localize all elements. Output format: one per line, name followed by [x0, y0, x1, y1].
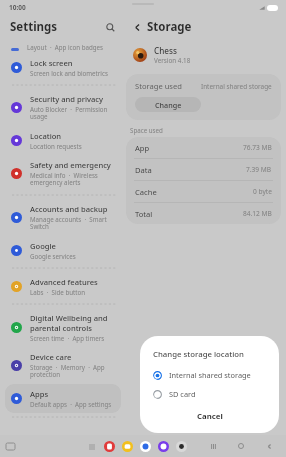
staticText: Storage — [147, 19, 192, 35]
staticText: Apps — [30, 389, 49, 399]
button[interactable]: Layout · App icon badges — [0, 38, 126, 51]
staticText: Cancel — [197, 411, 223, 422]
staticText: Data — [135, 165, 152, 175]
button[interactable]: Google — [5, 236, 121, 265]
button[interactable]: Search settings — [102, 19, 118, 35]
staticText: Auto Blocker · Permission usage — [30, 105, 108, 121]
staticText: SD card — [169, 389, 196, 399]
button[interactable]: Back — [264, 441, 274, 451]
button[interactable]: App — [104, 441, 115, 452]
staticText: Total — [135, 209, 153, 219]
button[interactable]: Security and privacy — [5, 89, 121, 126]
button[interactable]: App — [158, 441, 169, 452]
staticText: Internal shared storage — [169, 370, 251, 380]
staticText: Space used — [130, 126, 163, 134]
staticText: Chess — [154, 45, 177, 56]
staticText: 76.73 MB — [243, 143, 272, 152]
staticText: Accounts and backup — [30, 204, 108, 214]
staticText: Manage accounts · Smart Switch — [30, 215, 107, 231]
staticText: Change — [155, 100, 182, 110]
button[interactable]: Apps — [5, 384, 121, 413]
staticText: Location requests — [30, 142, 82, 150]
button[interactable]: SD card — [153, 389, 266, 399]
staticText: Change storage location — [153, 349, 244, 360]
staticText: Digital Wellbeing and parental controls — [30, 313, 108, 333]
button[interactable]: Back — [129, 19, 145, 35]
staticText: Screen lock and biometrics — [30, 69, 108, 77]
button[interactable]: Safety and emergency — [5, 155, 121, 192]
staticText: Google services — [30, 252, 76, 260]
staticText: 7.39 MB — [246, 165, 272, 174]
button[interactable]: Total — [126, 203, 281, 224]
staticText: Version 4.18 — [154, 56, 191, 65]
button[interactable]: Cancel — [153, 408, 266, 424]
button[interactable]: Accounts and backup — [5, 199, 121, 236]
staticText: Labs · Side button — [30, 288, 86, 296]
staticText: Screen time · App timers — [30, 334, 105, 342]
button[interactable]: Internal shared storage — [153, 370, 266, 380]
staticText: Device care — [30, 352, 72, 362]
button[interactable]: Cache — [126, 181, 281, 202]
button[interactable]: Recents — [6, 443, 15, 450]
button[interactable]: Data — [126, 159, 281, 180]
button[interactable]: All apps — [87, 442, 97, 452]
button[interactable]: Chess — [133, 45, 281, 65]
staticText: Medical info · Wireless emergency alerts — [30, 171, 98, 187]
staticText: Security and privacy — [30, 94, 104, 104]
button[interactable]: App — [140, 441, 151, 452]
button[interactable]: App — [122, 441, 133, 452]
staticText: 10:00 — [9, 3, 26, 12]
staticText: Advanced features — [30, 277, 98, 287]
staticText: Storage · Memory · App protection — [30, 363, 105, 379]
button[interactable]: Device care — [5, 347, 121, 384]
staticText: Location — [30, 131, 62, 141]
button[interactable]: App — [126, 137, 281, 158]
button[interactable]: Location — [5, 126, 121, 155]
staticText: Settings — [10, 19, 58, 35]
staticText: App — [135, 143, 150, 153]
staticText: 84.12 MB — [243, 209, 272, 218]
button[interactable]: Recent apps — [208, 441, 218, 451]
button[interactable]: Lock screen — [5, 53, 121, 82]
staticText: 0 byte — [253, 187, 272, 196]
staticText: Cache — [135, 187, 157, 197]
staticText: Default apps · App settings — [30, 400, 112, 408]
staticText: Internal shared storage — [201, 82, 272, 91]
staticText: Lock screen — [30, 58, 73, 68]
staticText: Google — [30, 241, 56, 251]
staticText: Safety and emergency — [30, 160, 111, 170]
staticText: Storage used — [135, 81, 182, 91]
button[interactable]: App — [176, 441, 187, 452]
staticText: Layout · App icon badges — [27, 43, 104, 51]
button[interactable]: Advanced features — [5, 272, 121, 301]
button[interactable]: Change — [135, 97, 201, 112]
button[interactable]: Home — [236, 441, 246, 451]
button[interactable]: Digital Wellbeing and parental controls — [5, 308, 121, 347]
